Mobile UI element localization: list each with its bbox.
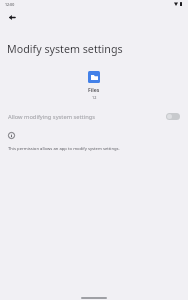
button[interactable]: Allow modifying system settings (0, 109, 188, 125)
staticText: Modify system settings (7, 42, 123, 57)
staticText: This permission allows an app to modify … (8, 146, 120, 152)
staticText: 12:00 (5, 2, 15, 7)
staticText: Allow modifying system settings (8, 113, 95, 121)
staticText: Files (88, 86, 100, 93)
staticText: 12 (92, 95, 97, 100)
button[interactable]: Navigate up (2, 7, 22, 27)
